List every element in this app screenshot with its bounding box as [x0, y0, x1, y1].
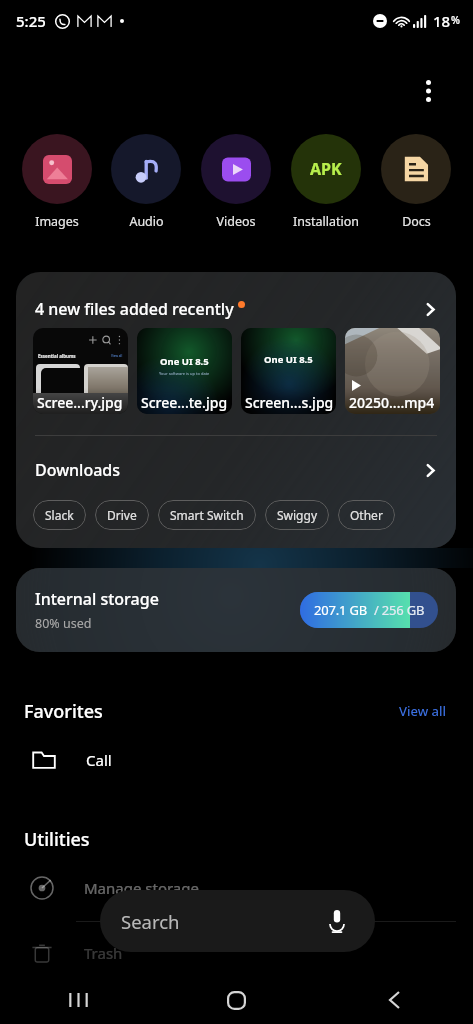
button[interactable]: Home — [157, 976, 315, 1024]
button[interactable]: Videos — [192, 134, 280, 230]
button[interactable]: 4 new files added recently — [16, 286, 456, 332]
staticText: Your software is up to date — [159, 371, 210, 376]
button[interactable]: One UI 8.5 — [137, 328, 232, 414]
staticText: / 256 GB — [374, 601, 425, 619]
staticText: 18 — [433, 11, 451, 31]
staticText: Scree...ry.jpg — [37, 393, 123, 412]
button[interactable]: Trash — [0, 927, 473, 979]
staticText: Docs — [402, 213, 431, 230]
staticText: Other — [350, 507, 383, 523]
button[interactable]: Swiggy — [265, 500, 329, 530]
staticText: APK — [310, 158, 342, 180]
staticText: View all — [399, 702, 447, 720]
staticText: Scree...te.jpg — [141, 393, 228, 412]
staticText: Favorites — [24, 699, 103, 724]
staticText: Swiggy — [277, 507, 317, 523]
button[interactable]: One UI 8.5 — [241, 328, 336, 414]
button[interactable]: Back — [315, 976, 473, 1024]
button[interactable]: Manage storage — [0, 862, 473, 914]
button[interactable]: Call — [0, 734, 473, 786]
button[interactable]: More options — [405, 68, 451, 114]
staticText: Screen...s.jpg — [245, 393, 334, 412]
button[interactable]: 20250....mp4 — [345, 328, 440, 414]
staticText: 20250....mp4 — [349, 393, 435, 412]
staticText: 5:25 — [16, 11, 46, 31]
staticText: Drive — [107, 507, 137, 523]
staticText: View all — [111, 354, 123, 358]
staticText: 4 new files added recently — [35, 298, 234, 320]
button[interactable]: Drive — [95, 500, 149, 530]
button[interactable]: Smart Switch — [158, 500, 256, 530]
button[interactable]: Images — [13, 134, 101, 230]
staticText: 207.1 GB — [314, 601, 367, 619]
staticText: Slack — [45, 507, 74, 523]
staticText: 80% used — [35, 615, 92, 632]
staticText: Manage storage — [84, 878, 199, 898]
button[interactable]: View all — [395, 698, 451, 724]
staticText: One UI 8.5 — [264, 353, 313, 366]
staticText: Essential albums — [38, 353, 76, 359]
other: Voice search — [329, 909, 345, 934]
staticText: Audio — [129, 213, 164, 230]
button[interactable]: Docs — [372, 134, 460, 230]
staticText: % — [451, 13, 460, 27]
button[interactable]: Audio — [102, 134, 190, 230]
staticText: Downloads — [35, 459, 121, 481]
staticText: Installation — [293, 213, 359, 230]
button[interactable]: Search — [100, 890, 375, 952]
button[interactable]: Internal storage — [16, 568, 456, 652]
button[interactable]: Slack — [33, 500, 86, 530]
staticText: Search — [121, 909, 180, 934]
button[interactable]: Other — [338, 500, 395, 530]
staticText: One UI 8.5 — [160, 355, 209, 368]
staticText: Call — [86, 750, 112, 770]
staticText: Trash — [84, 943, 123, 963]
staticText: Smart Switch — [170, 507, 244, 523]
staticText: Utilities — [24, 827, 90, 852]
staticText: Images — [35, 213, 79, 230]
button[interactable]: Downloads — [16, 448, 456, 492]
button[interactable]: Recents — [0, 976, 157, 1024]
staticText: Videos — [216, 213, 256, 230]
button[interactable]: Essential albums — [33, 328, 128, 414]
staticText: Internal storage — [35, 588, 159, 610]
button[interactable]: APK — [282, 134, 370, 230]
